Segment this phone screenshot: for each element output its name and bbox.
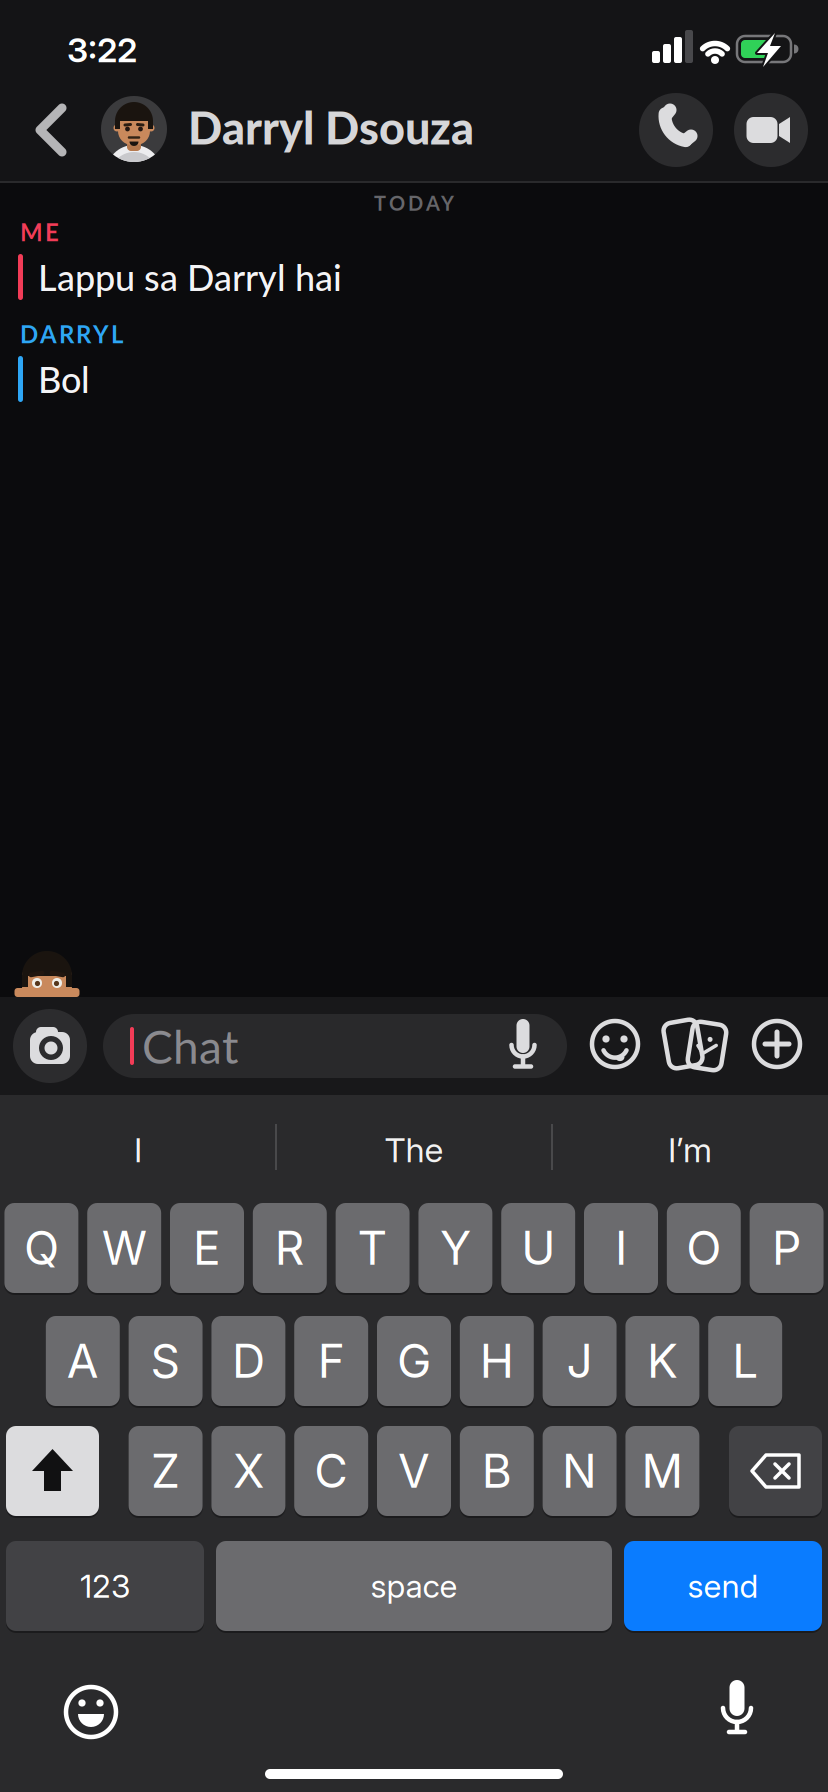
staticText: S	[151, 1333, 181, 1389]
staticText: X	[233, 1443, 264, 1499]
staticText: P	[772, 1220, 801, 1276]
staticText: H	[480, 1333, 514, 1389]
staticText: B	[482, 1443, 512, 1499]
staticText: send	[687, 1567, 758, 1605]
staticText: K	[647, 1333, 678, 1389]
staticText: Q	[24, 1220, 59, 1276]
staticText: U	[521, 1220, 555, 1276]
staticText: ME	[20, 218, 59, 246]
staticText: Bol	[38, 357, 90, 401]
staticText: G	[397, 1333, 431, 1389]
staticText: I	[134, 1129, 142, 1170]
staticText: T	[358, 1220, 388, 1276]
staticText: F	[318, 1333, 345, 1389]
staticText: R	[275, 1220, 305, 1276]
staticText: L	[732, 1333, 758, 1389]
staticText: E	[193, 1220, 221, 1276]
staticText: space	[370, 1567, 457, 1605]
staticText: D	[232, 1333, 265, 1389]
staticText: O	[686, 1220, 721, 1276]
staticText: 123	[80, 1567, 130, 1605]
staticText: N	[562, 1443, 597, 1499]
staticText: A	[67, 1333, 99, 1389]
staticText: M	[641, 1443, 683, 1499]
staticText: V	[398, 1443, 430, 1499]
staticText: The	[384, 1129, 443, 1170]
staticText: Chat	[142, 1018, 238, 1074]
staticText: TODAY	[374, 191, 454, 215]
staticText: Lappu sa Darryl hai	[38, 255, 342, 299]
staticText: 3:22	[67, 29, 137, 70]
staticText: J	[567, 1333, 593, 1389]
staticText: Z	[151, 1443, 180, 1499]
staticText: DARRYL	[20, 320, 123, 348]
staticText: Darryl Dsouza	[188, 100, 474, 154]
staticText: I	[615, 1220, 627, 1276]
staticText: I’m	[668, 1129, 712, 1170]
staticText: W	[102, 1220, 147, 1276]
staticText: C	[314, 1443, 348, 1499]
staticText: Y	[440, 1220, 471, 1276]
